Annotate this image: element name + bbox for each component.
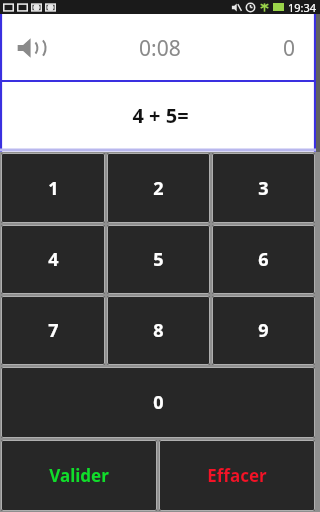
button[interactable]: 8 [107,296,210,365]
staticText: 0 [283,34,296,63]
staticText: 7 [48,318,59,343]
button[interactable]: 9 [212,296,315,365]
staticText: Effacer [207,464,267,487]
button[interactable]: Repeat sound [10,31,58,65]
button[interactable]: Valider [1,440,157,511]
staticText: 3 [258,176,269,201]
button[interactable]: 2 [107,153,210,223]
staticText: 2 [153,176,164,201]
button[interactable]: 5 [107,225,210,294]
staticText: 0:08 [139,34,181,63]
staticText: 19:34 [288,0,317,14]
button[interactable]: 4 [1,225,105,294]
staticText: Valider [49,464,109,487]
button[interactable]: Effacer [159,440,315,511]
staticText: 1 [48,176,59,201]
staticText: 4 [48,247,59,272]
staticText: 8 [153,318,164,343]
staticText: 4 + 5= [132,102,189,129]
staticText: 9 [258,318,269,343]
button[interactable]: 0 [1,367,315,438]
button[interactable]: 3 [212,153,315,223]
staticText: 6 [258,247,269,272]
button[interactable]: 7 [1,296,105,365]
staticText: 5 [153,247,164,272]
button[interactable]: 6 [212,225,315,294]
button[interactable]: 1 [1,153,105,223]
staticText: 0 [153,390,164,415]
